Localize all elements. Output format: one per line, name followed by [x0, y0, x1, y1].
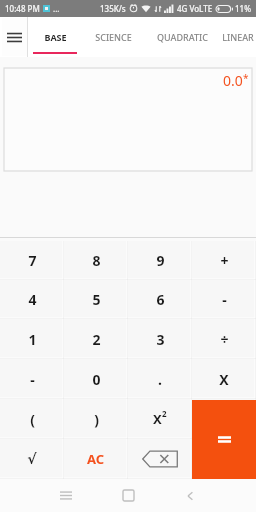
staticText: *: [243, 71, 249, 85]
button[interactable]: 9: [128, 241, 192, 280]
button[interactable]: LINEAR: [220, 17, 256, 57]
staticText: 135K/s: [100, 3, 126, 14]
button[interactable]: 3: [128, 319, 192, 359]
button[interactable]: X: [192, 359, 256, 399]
button[interactable]: 0: [64, 359, 128, 399]
button[interactable]: 7: [0, 241, 64, 280]
staticText: X: [153, 410, 162, 428]
staticText: ...: [53, 3, 60, 14]
staticText: 4G VoLTE: [177, 3, 213, 14]
button[interactable]: 8: [64, 241, 128, 280]
button[interactable]: √: [0, 439, 64, 479]
staticText: 8: [92, 251, 101, 270]
button[interactable]: Recents: [44, 479, 88, 512]
button[interactable]: ÷: [192, 319, 256, 359]
button[interactable]: -: [0, 359, 64, 399]
staticText: ): [94, 410, 99, 429]
staticText: .: [158, 370, 162, 389]
staticText: 10:48 PM: [5, 3, 40, 14]
button[interactable]: 1: [0, 319, 64, 359]
button[interactable]: 5: [64, 280, 128, 319]
staticText: X: [219, 370, 229, 389]
button[interactable]: Home: [106, 479, 150, 512]
button[interactable]: Backspace: [128, 439, 192, 479]
button[interactable]: X: [128, 399, 192, 439]
staticText: 1: [28, 330, 37, 349]
button[interactable]: BASE: [28, 17, 82, 57]
staticText: 9: [156, 251, 165, 270]
button[interactable]: -: [192, 280, 256, 319]
staticText: 6: [156, 290, 165, 309]
staticText: -: [222, 290, 227, 309]
button[interactable]: +: [192, 241, 256, 280]
button[interactable]: QUADRATIC: [144, 17, 220, 57]
staticText: 7: [28, 251, 37, 270]
button[interactable]: ): [64, 399, 128, 439]
staticText: SCIENCE: [95, 31, 132, 43]
staticText: 5: [92, 290, 101, 309]
staticText: 0.0: [223, 71, 243, 90]
staticText: √: [27, 451, 37, 467]
button[interactable]: 4: [0, 280, 64, 319]
staticText: ÷: [220, 330, 229, 349]
button[interactable]: Menu: [0, 17, 28, 57]
button[interactable]: 2: [64, 319, 128, 359]
button[interactable]: =: [192, 399, 256, 439]
staticText: 3: [156, 330, 165, 349]
button[interactable]: Back: [168, 479, 212, 512]
staticText: 0: [92, 370, 101, 389]
button[interactable]: (: [0, 399, 64, 439]
button[interactable]: [192, 400, 256, 479]
staticText: LINEAR: [222, 31, 254, 43]
button[interactable]: AC: [64, 439, 128, 479]
staticText: 2: [92, 330, 101, 349]
staticText: 4: [28, 290, 37, 309]
staticText: 2: [162, 408, 167, 419]
button[interactable]: .: [128, 359, 192, 399]
staticText: +: [220, 251, 229, 270]
button[interactable]: SCIENCE: [82, 17, 144, 57]
staticText: -: [30, 370, 35, 389]
staticText: (: [30, 410, 35, 429]
staticText: 11%: [235, 3, 251, 14]
button[interactable]: 6: [128, 280, 192, 319]
staticText: BASE: [44, 31, 67, 43]
staticText: QUADRATIC: [157, 31, 208, 43]
staticText: AC: [87, 450, 105, 468]
